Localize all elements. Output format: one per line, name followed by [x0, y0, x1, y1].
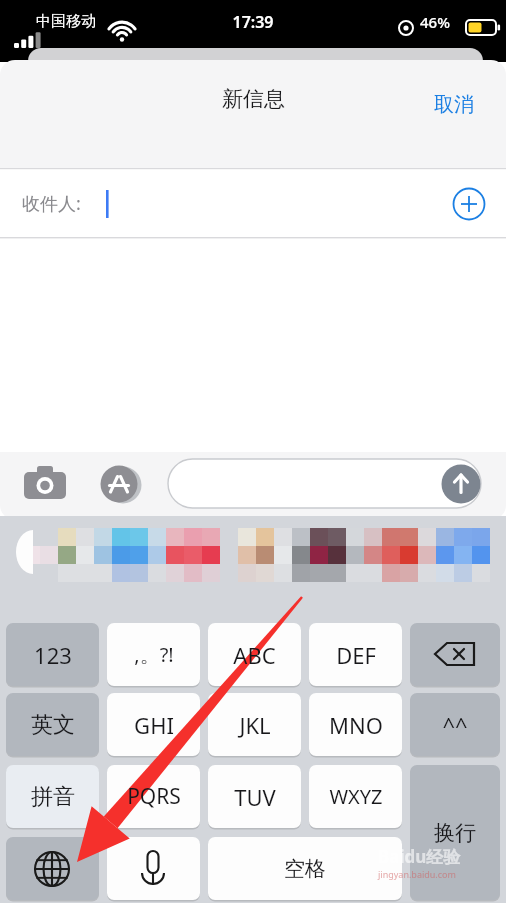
button[interactable]: JKL [208, 693, 301, 756]
staticText: 换行 [434, 820, 476, 846]
staticText: 中国移动 [36, 12, 96, 31]
button[interactable]: 空格 [208, 837, 402, 900]
button[interactable]: ABC [208, 623, 301, 686]
staticText: jingyan.baidu.com [378, 868, 456, 880]
button[interactable]: 换行 [410, 765, 500, 900]
staticText: TUV [234, 782, 276, 812]
button[interactable]: Switch keyboard [6, 837, 99, 900]
button[interactable]: ^^ [410, 693, 500, 756]
button[interactable]: Voice input [107, 837, 200, 900]
button[interactable]: MNO [309, 693, 402, 756]
button[interactable]: WXYZ [309, 765, 402, 828]
staticText: ^^ [442, 710, 468, 740]
button[interactable]: ,。?! [107, 623, 200, 686]
staticText: MNO [329, 710, 383, 740]
staticText: PQRS [127, 782, 181, 811]
button[interactable]: Camera [18, 458, 72, 508]
staticText: 123 [34, 640, 72, 670]
staticText: 46% [420, 12, 450, 32]
button[interactable]: 收件人: [0, 169, 506, 237]
button[interactable] [168, 459, 481, 508]
button[interactable]: TUV [208, 765, 301, 828]
staticText: DEF [336, 640, 376, 670]
button[interactable]: GHI [107, 693, 200, 756]
staticText: ,。?! [134, 641, 174, 668]
staticText: Baidu经验 [378, 845, 461, 868]
button[interactable]: 取消 [428, 88, 480, 121]
staticText: 空格 [284, 856, 326, 882]
staticText: 英文 [31, 711, 75, 739]
button[interactable]: PQRS [107, 765, 200, 828]
staticText: GHI [134, 710, 174, 740]
button[interactable]: 英文 [6, 693, 99, 756]
button[interactable]: 拼音 [6, 765, 99, 828]
button[interactable]: Send [441, 464, 481, 504]
staticText: JKL [239, 710, 271, 740]
staticText: 取消 [434, 92, 474, 117]
staticText: 收件人: [22, 191, 81, 216]
staticText: 17:39 [0, 11, 506, 33]
button[interactable]: 123 [6, 623, 99, 686]
button[interactable]: Backspace [410, 623, 500, 686]
staticText: 新信息 [222, 86, 285, 112]
staticText: ABC [233, 640, 276, 670]
staticText: WXYZ [329, 783, 383, 810]
button[interactable]: App Store [94, 458, 148, 508]
staticText: 拼音 [31, 783, 75, 811]
button[interactable]: DEF [309, 623, 402, 686]
button[interactable]: Add contact [447, 182, 491, 226]
